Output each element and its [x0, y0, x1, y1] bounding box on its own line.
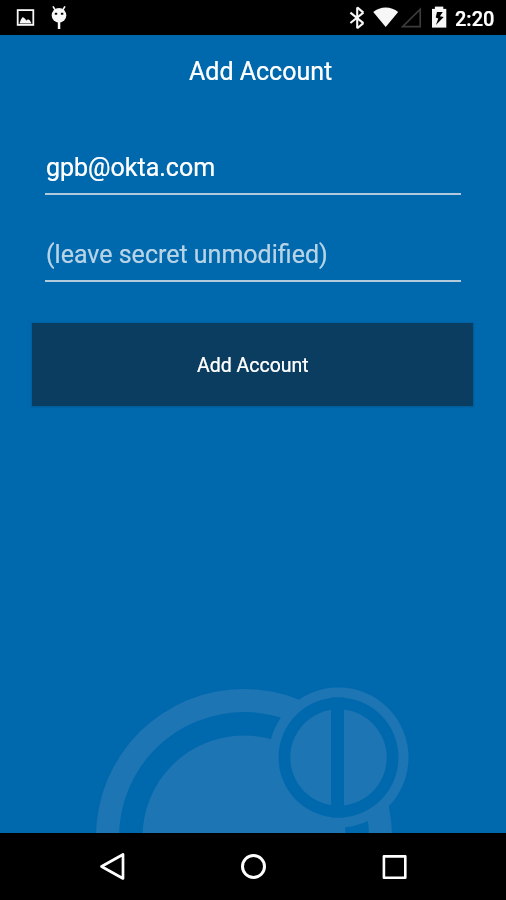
button[interactable]: Back — [84, 833, 140, 900]
staticText: Add Account — [197, 354, 309, 377]
staticText: gpb@okta.com — [46, 153, 216, 182]
button[interactable]: (leave secret unmodified) — [45, 240, 461, 282]
staticText: (leave secret unmodified) — [46, 240, 328, 269]
button[interactable]: Recent apps — [366, 833, 422, 900]
button[interactable]: gpb@okta.com — [45, 153, 461, 195]
staticText: 2:20 — [455, 7, 495, 30]
button[interactable]: Add Account — [32, 323, 473, 406]
staticText: Add Account — [189, 57, 333, 86]
button[interactable]: Home — [225, 833, 281, 900]
